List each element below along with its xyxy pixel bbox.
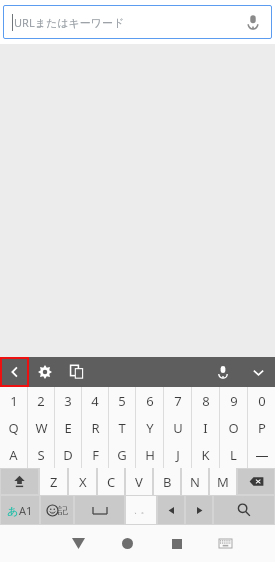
button[interactable]: P [248, 414, 275, 441]
staticText: N [190, 473, 200, 491]
button[interactable]: Back [54, 525, 103, 562]
staticText: X [79, 473, 87, 491]
button[interactable]: Hide keyboard [241, 357, 275, 387]
staticText: Y [146, 419, 154, 437]
staticText: Q [8, 419, 19, 437]
staticText: 記 [58, 504, 68, 517]
staticText: A1 [19, 503, 33, 518]
staticText: S [37, 446, 45, 464]
button[interactable]: 9 [220, 387, 247, 414]
staticText: J [176, 446, 180, 464]
button[interactable]: Q [0, 414, 27, 441]
staticText: Z [50, 473, 58, 491]
staticText: 1 [10, 392, 18, 410]
button[interactable]: 0 [248, 387, 275, 414]
button[interactable]: Clipboard [60, 357, 94, 387]
button[interactable]: L [220, 441, 247, 468]
button[interactable]: I [192, 414, 219, 441]
button[interactable]: O [220, 414, 247, 441]
button[interactable]: Punctuation [126, 496, 156, 524]
button[interactable]: 1 [0, 387, 27, 414]
button[interactable]: G [109, 441, 135, 468]
staticText: 9 [230, 392, 238, 410]
staticText: 7 [174, 392, 182, 410]
staticText: P [258, 419, 266, 437]
button[interactable]: 7 [164, 387, 191, 414]
button[interactable]: Recent apps [152, 525, 201, 562]
staticText: URLまたはキーワード [14, 15, 125, 30]
staticText: W [35, 419, 48, 437]
button[interactable]: K [192, 441, 219, 468]
staticText: 4 [91, 392, 99, 410]
staticText: 6 [146, 392, 154, 410]
staticText: A [9, 446, 18, 464]
button[interactable]: 8 [192, 387, 219, 414]
staticText: H [145, 446, 155, 464]
button[interactable]: X [69, 468, 96, 495]
staticText: I [203, 419, 208, 437]
button[interactable]: Shift [1, 469, 38, 494]
button[interactable]: W [28, 414, 54, 441]
button[interactable]: 4 [82, 387, 108, 414]
button[interactable]: Move cursor right [186, 496, 212, 524]
staticText: G [117, 446, 127, 464]
button[interactable]: 3 [55, 387, 81, 414]
button[interactable]: Search [214, 496, 274, 524]
staticText: F [92, 446, 99, 464]
staticText: B [163, 473, 172, 491]
staticText: 8 [202, 392, 210, 410]
button[interactable]: URLまたはキーワード [3, 5, 272, 39]
button[interactable]: D [55, 441, 81, 468]
staticText: M [217, 473, 229, 491]
button[interactable]: 2 [28, 387, 54, 414]
staticText: U [173, 419, 183, 437]
staticText: E [64, 419, 72, 437]
button[interactable]: R [82, 414, 108, 441]
button[interactable]: T [109, 414, 135, 441]
button[interactable]: Voice search [238, 7, 268, 37]
staticText: V [135, 473, 143, 491]
button[interactable]: J [164, 441, 191, 468]
staticText: T [118, 419, 126, 437]
button[interactable]: V [126, 468, 152, 495]
button[interactable]: Switch keyboard [201, 525, 250, 562]
button[interactable]: あ [1, 496, 39, 524]
button[interactable]: F [82, 441, 108, 468]
staticText: 2 [37, 392, 45, 410]
button[interactable]: M [210, 468, 236, 495]
button[interactable]: U [164, 414, 191, 441]
staticText: K [201, 446, 210, 464]
staticText: O [228, 419, 239, 437]
button[interactable]: — [248, 441, 275, 468]
button[interactable]: E [55, 414, 81, 441]
staticText: C [107, 473, 116, 491]
button[interactable]: Emoji and symbols [41, 496, 73, 524]
staticText: 、。 [134, 506, 148, 515]
staticText: L [230, 446, 237, 464]
staticText: — [255, 446, 269, 464]
button[interactable]: Z [40, 468, 67, 495]
staticText: D [63, 446, 73, 464]
button[interactable]: 5 [109, 387, 135, 414]
button[interactable]: 6 [136, 387, 163, 414]
button[interactable]: C [98, 468, 124, 495]
button[interactable]: B [154, 468, 180, 495]
button[interactable]: H [136, 441, 163, 468]
staticText: 0 [258, 392, 266, 410]
button[interactable]: Home [103, 525, 152, 562]
button[interactable]: Backspace [238, 469, 274, 494]
button[interactable]: Voice input [205, 357, 241, 387]
staticText: R [91, 419, 100, 437]
button[interactable]: Back [0, 357, 29, 387]
button[interactable]: Settings [29, 357, 60, 387]
button[interactable]: Move cursor left [158, 496, 184, 524]
button[interactable]: Y [136, 414, 163, 441]
button[interactable]: S [28, 441, 54, 468]
button[interactable]: A [0, 441, 27, 468]
staticText: あ [7, 504, 19, 518]
staticText: 3 [64, 392, 72, 410]
staticText: 5 [118, 392, 126, 410]
button[interactable]: Space [75, 496, 124, 524]
button[interactable]: N [182, 468, 208, 495]
